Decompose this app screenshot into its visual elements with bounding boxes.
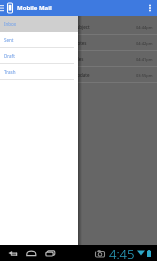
button[interactable]: Notes (0, 35, 157, 51)
staticText: Sent (4, 37, 14, 43)
button[interactable]: Sent (0, 32, 78, 48)
button[interactable]: Trash (0, 64, 78, 80)
button[interactable]: Recent apps (42, 245, 58, 261)
staticText: 03:55pm (136, 73, 153, 78)
staticText: 04:41pm (136, 57, 153, 62)
button[interactable]: Open navigation drawer (0, 0, 7, 16)
staticText: 04:44pm (136, 25, 153, 30)
button[interactable]: Inbox (0, 16, 78, 32)
button[interactable]: Update (0, 67, 157, 83)
staticText: Notes (74, 40, 87, 46)
button[interactable]: More options (143, 0, 157, 16)
button[interactable]: Draft (0, 48, 78, 64)
staticText: Mobile Mail (17, 4, 52, 12)
staticText: Files (74, 56, 84, 62)
button[interactable]: Files (0, 51, 157, 67)
staticText: Inbox (4, 21, 17, 27)
staticText: Subject (74, 24, 90, 30)
staticText: 04:42pm (136, 41, 153, 46)
staticText: 4:45 (109, 245, 135, 261)
button[interactable]: Subject (0, 19, 157, 35)
button[interactable]: Back (5, 245, 21, 261)
staticText: Trash (4, 69, 16, 75)
staticText: Update (74, 72, 90, 78)
staticText: Draft (4, 53, 15, 59)
button[interactable]: Home (23, 245, 39, 261)
